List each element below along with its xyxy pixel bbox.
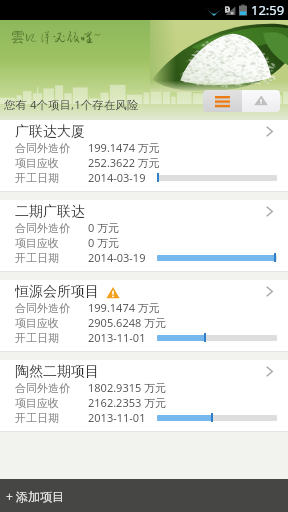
button[interactable]: 二期广联达: [0, 200, 288, 272]
button[interactable]: + 添加项目: [0, 479, 288, 512]
staticText: 项目应收: [15, 236, 59, 250]
button[interactable]: 恒源会所项目: [0, 280, 288, 352]
staticText: + 添加项目: [6, 488, 64, 504]
staticText: 2905.6248 万元: [88, 315, 167, 330]
staticText: 2014-03-19: [88, 170, 146, 185]
staticText: 项目应收: [15, 156, 59, 170]
staticText: 合同外造价: [15, 221, 70, 235]
staticText: 1802.9315 万元: [88, 380, 167, 395]
staticText: 雲记得必饭哩~: [11, 29, 102, 46]
button[interactable]: Risk view: [242, 90, 280, 112]
button[interactable]: 陶然二期项目: [0, 360, 288, 432]
staticText: 开工日期: [15, 411, 59, 425]
staticText: 12:59: [251, 1, 285, 19]
staticText: 二期广联达: [15, 203, 85, 220]
button[interactable]: List view: [203, 90, 242, 112]
staticText: 0 万元: [88, 235, 120, 250]
staticText: 252.3622 万元: [88, 155, 160, 170]
staticText: 199.1474 万元: [88, 300, 160, 315]
button[interactable]: 广联达大厦: [0, 120, 288, 192]
staticText: 0 万元: [88, 220, 120, 235]
staticText: 合同外造价: [15, 141, 70, 155]
staticText: 陶然二期项目: [15, 363, 99, 380]
staticText: 开工日期: [15, 171, 59, 185]
staticText: 合同外造价: [15, 381, 70, 395]
staticText: 您有 4个项目,1个存在风险: [4, 97, 139, 113]
staticText: 项目应收: [15, 316, 59, 330]
staticText: 合同外造价: [15, 301, 70, 315]
staticText: 199.1474 万元: [88, 140, 160, 155]
staticText: 开工日期: [15, 331, 59, 345]
staticText: 恒源会所项目: [15, 283, 99, 300]
staticText: 广联达大厦: [15, 123, 85, 140]
staticText: 2013-11-01: [88, 330, 146, 345]
staticText: 2162.2353 万元: [88, 395, 167, 410]
staticText: 2013-11-01: [88, 410, 146, 425]
staticText: 项目应收: [15, 396, 59, 410]
staticText: 2014-03-19: [88, 250, 146, 265]
staticText: 开工日期: [15, 251, 59, 265]
